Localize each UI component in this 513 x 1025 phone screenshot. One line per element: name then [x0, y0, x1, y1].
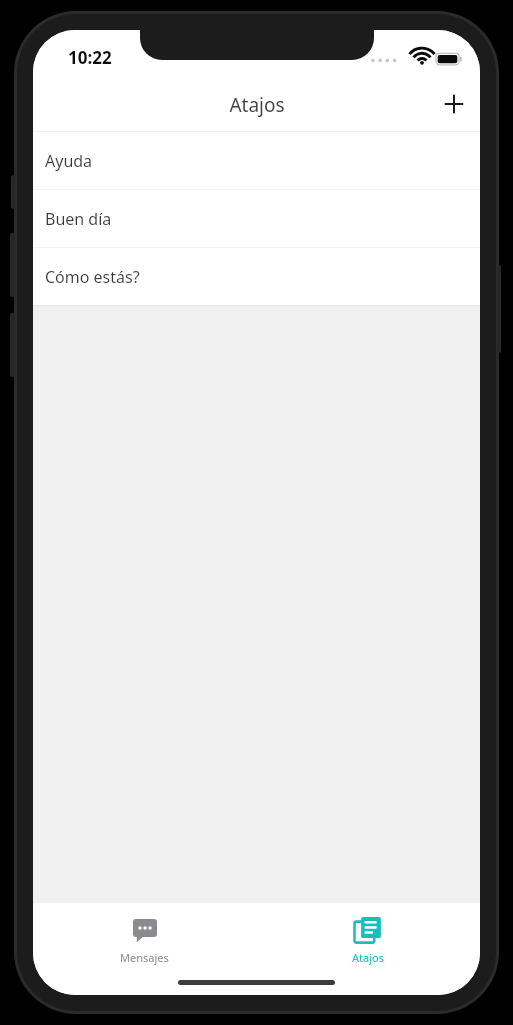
staticText: Mensajes: [120, 950, 169, 965]
staticText: Cómo estás?: [45, 266, 140, 288]
button[interactable]: Atajos: [256, 911, 480, 995]
button[interactable]: Mensajes: [33, 911, 256, 995]
button[interactable]: Cómo estás?: [33, 248, 480, 305]
staticText: Atajos: [352, 950, 384, 965]
button[interactable]: Buen día: [33, 190, 480, 247]
staticText: 10:22: [68, 46, 112, 69]
staticText: Ayuda: [45, 150, 93, 172]
staticText: Atajos: [229, 92, 285, 118]
button[interactable]: Add shortcut: [436, 86, 472, 122]
button[interactable]: Ayuda: [33, 132, 480, 189]
staticText: Buen día: [45, 208, 112, 230]
